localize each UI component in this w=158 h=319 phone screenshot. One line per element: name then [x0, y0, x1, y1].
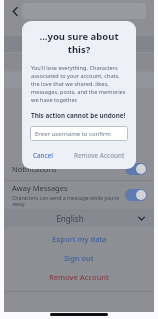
- staticText: Notifications: [12, 164, 57, 174]
- button[interactable]: [4, 54, 154, 70]
- button[interactable]: Remove Account: [71, 149, 128, 162]
- button[interactable]: Sign out: [58, 252, 100, 264]
- button[interactable]: Back: [8, 4, 22, 18]
- staticText: Export my data: [52, 234, 107, 244]
- staticText: ...you sure about this?: [30, 30, 128, 56]
- button[interactable]: Remove Account: [43, 271, 115, 283]
- button[interactable]: English: [4, 209, 154, 227]
- button[interactable]: Cancel: [30, 149, 56, 162]
- button[interactable]: Enter username to confirm: [30, 126, 128, 141]
- button[interactable]: [4, 72, 154, 88]
- staticText: Remove Account: [49, 272, 109, 282]
- button[interactable]: [4, 36, 154, 52]
- staticText: Sign out: [64, 253, 94, 263]
- staticText: Cancel: [33, 151, 53, 160]
- staticText: This action cannot be undone!: [31, 111, 127, 120]
- staticText: Communication: [51, 148, 108, 158]
- button[interactable]: Toggle: [125, 189, 147, 201]
- staticText: Characters can send a message while you'…: [12, 194, 121, 208]
- button[interactable]: Toggle: [125, 163, 147, 175]
- staticText: Enter username to confirm: [35, 130, 111, 138]
- button[interactable]: Away Messages: [4, 181, 154, 209]
- button[interactable]: Notifications: [4, 158, 154, 180]
- staticText: Security: [65, 26, 94, 36]
- staticText: Away Messages: [12, 183, 68, 193]
- staticText: You'll lose everything. Characters assoc…: [31, 64, 127, 104]
- button[interactable]: Export my data: [46, 233, 113, 245]
- staticText: English: [4, 213, 136, 224]
- staticText: Remove Account: [74, 151, 125, 160]
